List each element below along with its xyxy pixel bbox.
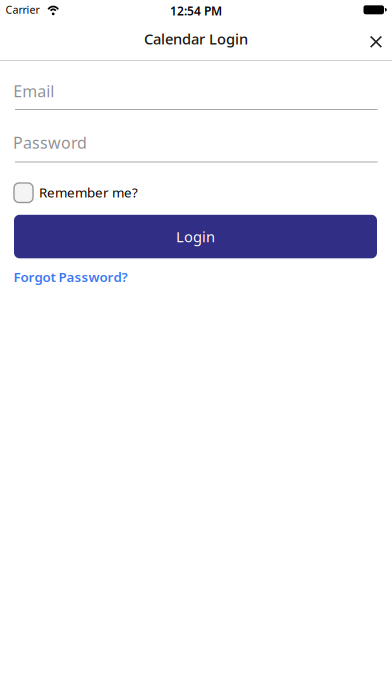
staticText: Remember me? xyxy=(39,183,138,201)
button[interactable]: Close xyxy=(364,30,388,54)
staticText: Password xyxy=(13,132,87,153)
staticText: Calendar Login xyxy=(144,29,248,48)
staticText: Login xyxy=(176,227,215,246)
button[interactable]: Forgot Password? xyxy=(13,268,127,286)
staticText: Forgot Password? xyxy=(13,268,127,286)
staticText: 12:54 PM xyxy=(170,3,222,19)
staticText: Carrier xyxy=(5,3,39,17)
button[interactable]: Remember me? xyxy=(14,183,138,202)
button[interactable]: Login xyxy=(14,215,377,258)
staticText: Email xyxy=(13,80,54,101)
